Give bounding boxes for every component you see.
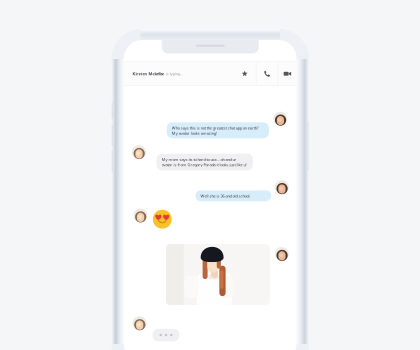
staticText: My mom says its to hard to use... oh and… — [161, 157, 246, 167]
button[interactable]: Favourite — [233, 62, 256, 85]
button[interactable]: Call — [256, 62, 278, 85]
staticText: Who says this is not the greatest chat a… — [172, 125, 259, 136]
staticText: is typing... — [166, 71, 183, 76]
button[interactable]: Video call — [278, 62, 296, 85]
staticText: Well she is 36 and old school. — [200, 193, 250, 199]
staticText: Kirsten Mckellar — [132, 71, 164, 76]
